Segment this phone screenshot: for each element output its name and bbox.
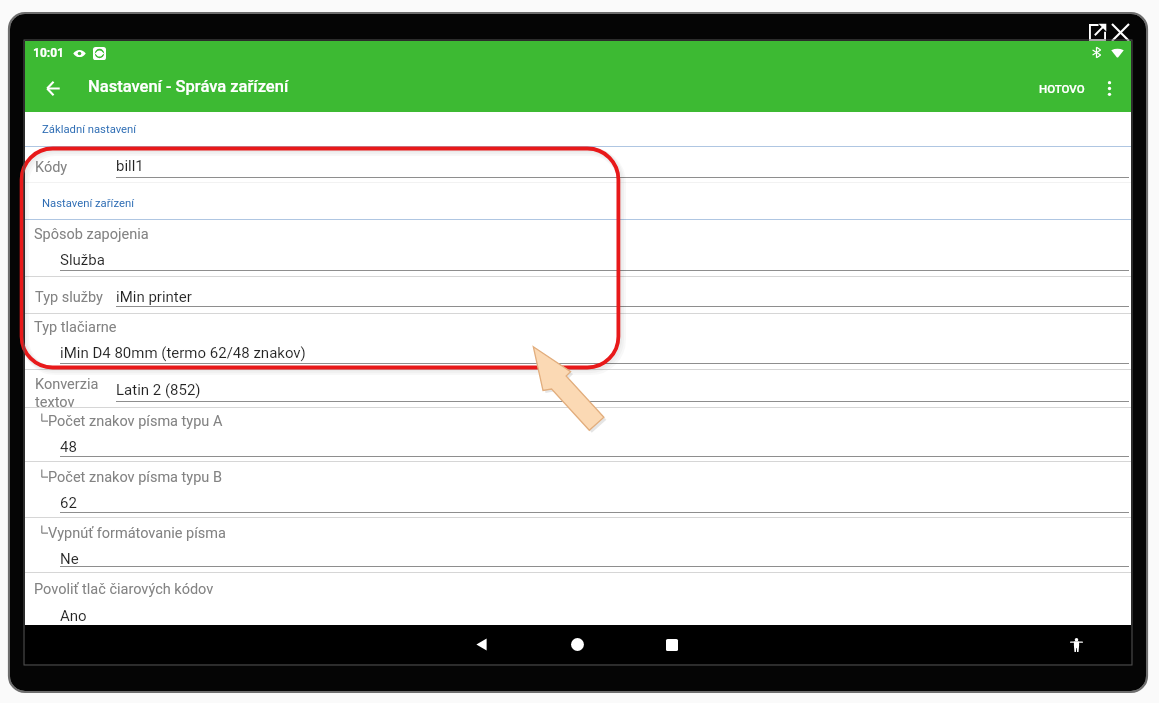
staticText: textov xyxy=(35,394,75,411)
button[interactable]: Recent apps xyxy=(646,625,698,664)
staticText: Typ tlačiarne xyxy=(34,319,117,336)
staticText: Nastavení zařízení xyxy=(42,197,134,210)
staticText: iMin printer xyxy=(116,288,192,306)
button[interactable]: HOTOVO xyxy=(1027,70,1090,107)
staticText: Spôsob zapojenia xyxy=(34,226,149,243)
staticText: Povoliť tlač čiarových kódov xyxy=(34,581,214,598)
staticText: HOTOVO xyxy=(1039,82,1085,95)
staticText: Počet znakov písma typu A xyxy=(48,413,223,430)
staticText: Ano xyxy=(60,607,87,625)
button[interactable]: Back xyxy=(32,67,74,109)
staticText: Služba xyxy=(60,251,105,269)
button[interactable]: Home xyxy=(551,625,603,664)
staticText: Základní nastavení xyxy=(42,123,137,136)
staticText: Latin 2 (852) xyxy=(116,381,201,399)
button[interactable]: Open in new window xyxy=(1083,18,1111,46)
staticText: Nastavení - Správa zařízení xyxy=(88,77,289,96)
button[interactable]: Nastavení zařízení xyxy=(42,197,134,210)
staticText: Ne xyxy=(60,550,79,568)
button[interactable]: Close xyxy=(1106,18,1134,46)
staticText: 10:01 xyxy=(33,46,64,60)
button[interactable]: Základní nastavení xyxy=(42,123,137,136)
staticText: Typ služby xyxy=(35,289,103,306)
staticText: Počet znakov písma typu B xyxy=(48,469,222,486)
staticText: 48 xyxy=(60,438,77,456)
staticText: 62 xyxy=(60,494,77,512)
button[interactable]: Accessibility xyxy=(1056,625,1096,664)
staticText: bill1 xyxy=(116,157,144,175)
staticText: iMin D4 80mm (termo 62/48 znakov) xyxy=(60,344,306,362)
staticText: Kódy xyxy=(35,159,68,176)
button[interactable]: More options xyxy=(1090,69,1128,107)
button[interactable]: Back xyxy=(455,625,507,664)
staticText: Konverzia xyxy=(35,376,99,393)
staticText: Vypnúť formátovanie písma xyxy=(48,525,226,542)
